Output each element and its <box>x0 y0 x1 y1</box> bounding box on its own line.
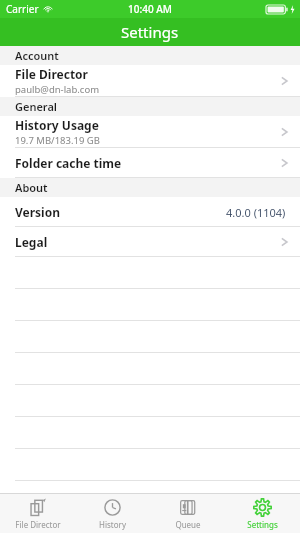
staticText: Settings <box>247 519 278 530</box>
button[interactable]: History Usage <box>0 116 300 148</box>
button[interactable]: Version <box>0 197 300 227</box>
staticText: Version <box>15 204 61 220</box>
staticText: paulb@dn-lab.com <box>15 83 100 96</box>
staticText: Legal <box>15 234 48 250</box>
button[interactable]: File Director <box>0 65 300 97</box>
staticText: Carrier <box>6 2 39 16</box>
staticText: 19.7 MB/183.19 GB <box>15 134 100 147</box>
staticText: 10:40 AM <box>128 2 172 16</box>
staticText: Folder cache time <box>15 155 122 171</box>
staticText: About <box>15 180 48 195</box>
button[interactable]: Queue <box>150 494 225 533</box>
staticText: History Usage <box>15 117 99 133</box>
staticText: File Director <box>15 519 61 530</box>
staticText: Account <box>15 48 59 63</box>
staticText: 4.0.0 (1104) <box>226 205 286 220</box>
button[interactable]: Legal <box>0 227 300 257</box>
staticText: Settings <box>121 22 179 42</box>
button[interactable]: File Director <box>0 494 75 533</box>
staticText: General <box>15 99 57 114</box>
button[interactable]: Folder cache time <box>0 148 300 178</box>
button[interactable]: History <box>75 494 150 533</box>
button[interactable]: Settings <box>225 494 300 533</box>
staticText: File Director <box>15 66 88 82</box>
staticText: History <box>99 519 126 530</box>
staticText: Queue <box>175 519 201 530</box>
